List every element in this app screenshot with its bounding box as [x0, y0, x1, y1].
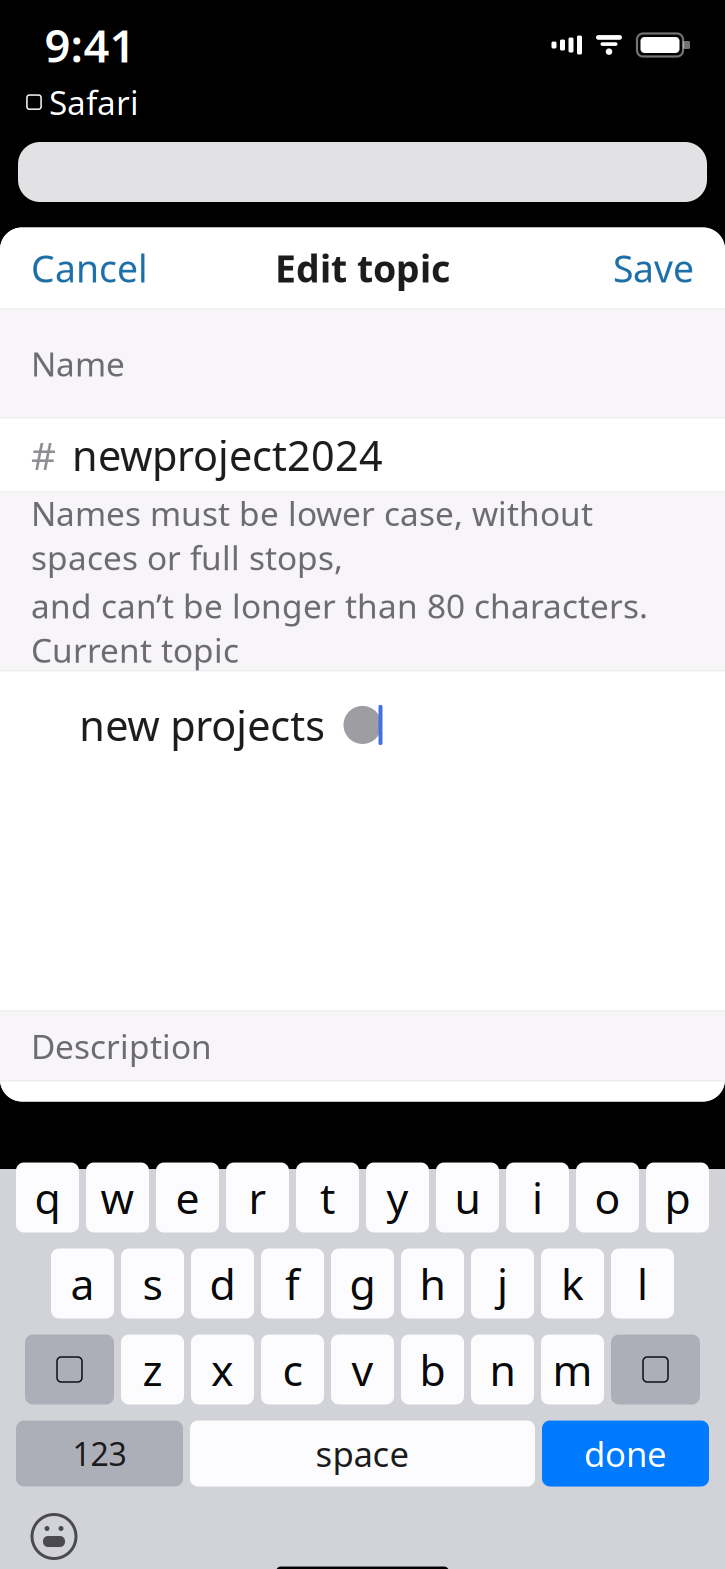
button[interactable]: new projects [0, 671, 725, 1010]
button[interactable]: x [191, 1334, 254, 1404]
staticText: n [489, 1341, 515, 1398]
staticText: b [419, 1341, 445, 1398]
button[interactable]: m [541, 1334, 604, 1404]
button[interactable]: g [331, 1248, 394, 1318]
button[interactable]: l [611, 1248, 674, 1318]
button[interactable]: h [401, 1248, 464, 1318]
button[interactable]: space [190, 1420, 535, 1486]
staticText: Cancel [31, 243, 148, 293]
staticText: e [175, 1169, 199, 1226]
staticText: done [584, 1430, 667, 1476]
button[interactable]: y [366, 1162, 429, 1232]
staticText: r [248, 1169, 266, 1226]
button[interactable]: v [331, 1334, 394, 1404]
staticText: new projects [79, 697, 325, 752]
staticText: Name [31, 341, 125, 386]
staticText: 9:41 [44, 15, 135, 75]
staticText: Edit topic [275, 243, 450, 293]
staticText: Safari [49, 80, 139, 124]
button[interactable]: z [121, 1334, 184, 1404]
button[interactable]: p [646, 1162, 709, 1232]
staticText: a [70, 1255, 94, 1312]
button[interactable]: Delete [611, 1334, 700, 1404]
button[interactable]: s [121, 1248, 184, 1318]
button[interactable]: t [296, 1162, 359, 1232]
button[interactable]: Save [593, 231, 714, 305]
staticText: v [351, 1341, 373, 1398]
staticText: z [142, 1341, 162, 1398]
staticText: j [497, 1255, 508, 1312]
staticText: newproject2024 [72, 428, 383, 482]
button[interactable]: a [51, 1248, 114, 1318]
button[interactable]: # [0, 418, 725, 491]
staticText: w [100, 1169, 134, 1226]
staticText: k [561, 1255, 584, 1312]
button[interactable]: 123 [16, 1420, 183, 1486]
button[interactable]: i [506, 1162, 569, 1232]
button[interactable]: u [436, 1162, 499, 1232]
staticText: g [349, 1255, 375, 1312]
staticText: s [142, 1255, 162, 1312]
staticText: l [637, 1255, 648, 1312]
staticText: c [282, 1341, 302, 1398]
button[interactable]: Safari [0, 76, 139, 128]
button[interactable]: done [542, 1420, 709, 1486]
button[interactable]: d [191, 1248, 254, 1318]
button[interactable]: f [261, 1248, 324, 1318]
button[interactable]: c [261, 1334, 324, 1404]
staticText: y [386, 1169, 408, 1226]
staticText: d [209, 1255, 235, 1312]
staticText: # [31, 429, 56, 481]
button[interactable]: w [86, 1162, 149, 1232]
staticText: h [419, 1255, 445, 1312]
staticText: u [454, 1169, 480, 1226]
staticText: q [34, 1169, 60, 1226]
button[interactable]: Cancel [11, 231, 168, 305]
staticText: Names must be lower case, without spaces… [31, 491, 593, 579]
button[interactable]: b [401, 1334, 464, 1404]
staticText: p [664, 1169, 690, 1226]
staticText: Current topic [31, 628, 239, 672]
button[interactable]: e [156, 1162, 219, 1232]
staticText: Save [613, 243, 694, 293]
button[interactable]: q [16, 1162, 79, 1232]
staticText: 123 [72, 1432, 126, 1475]
staticText: space [315, 1430, 409, 1476]
staticText: f [285, 1255, 300, 1312]
staticText: i [532, 1169, 543, 1226]
button[interactable]: o [576, 1162, 639, 1232]
button[interactable]: k [541, 1248, 604, 1318]
button[interactable]: Shift [25, 1334, 114, 1404]
button[interactable]: Emoji keyboard [0, 1506, 78, 1566]
button[interactable]: j [471, 1248, 534, 1318]
button[interactable]: n [471, 1334, 534, 1404]
staticText: t [320, 1169, 335, 1226]
staticText: Description [31, 1024, 212, 1068]
button[interactable]: r [226, 1162, 289, 1232]
staticText: o [594, 1169, 620, 1226]
staticText: and can’t be longer than 80 characters. [31, 583, 648, 628]
staticText: x [211, 1341, 234, 1398]
staticText: m [552, 1341, 592, 1398]
